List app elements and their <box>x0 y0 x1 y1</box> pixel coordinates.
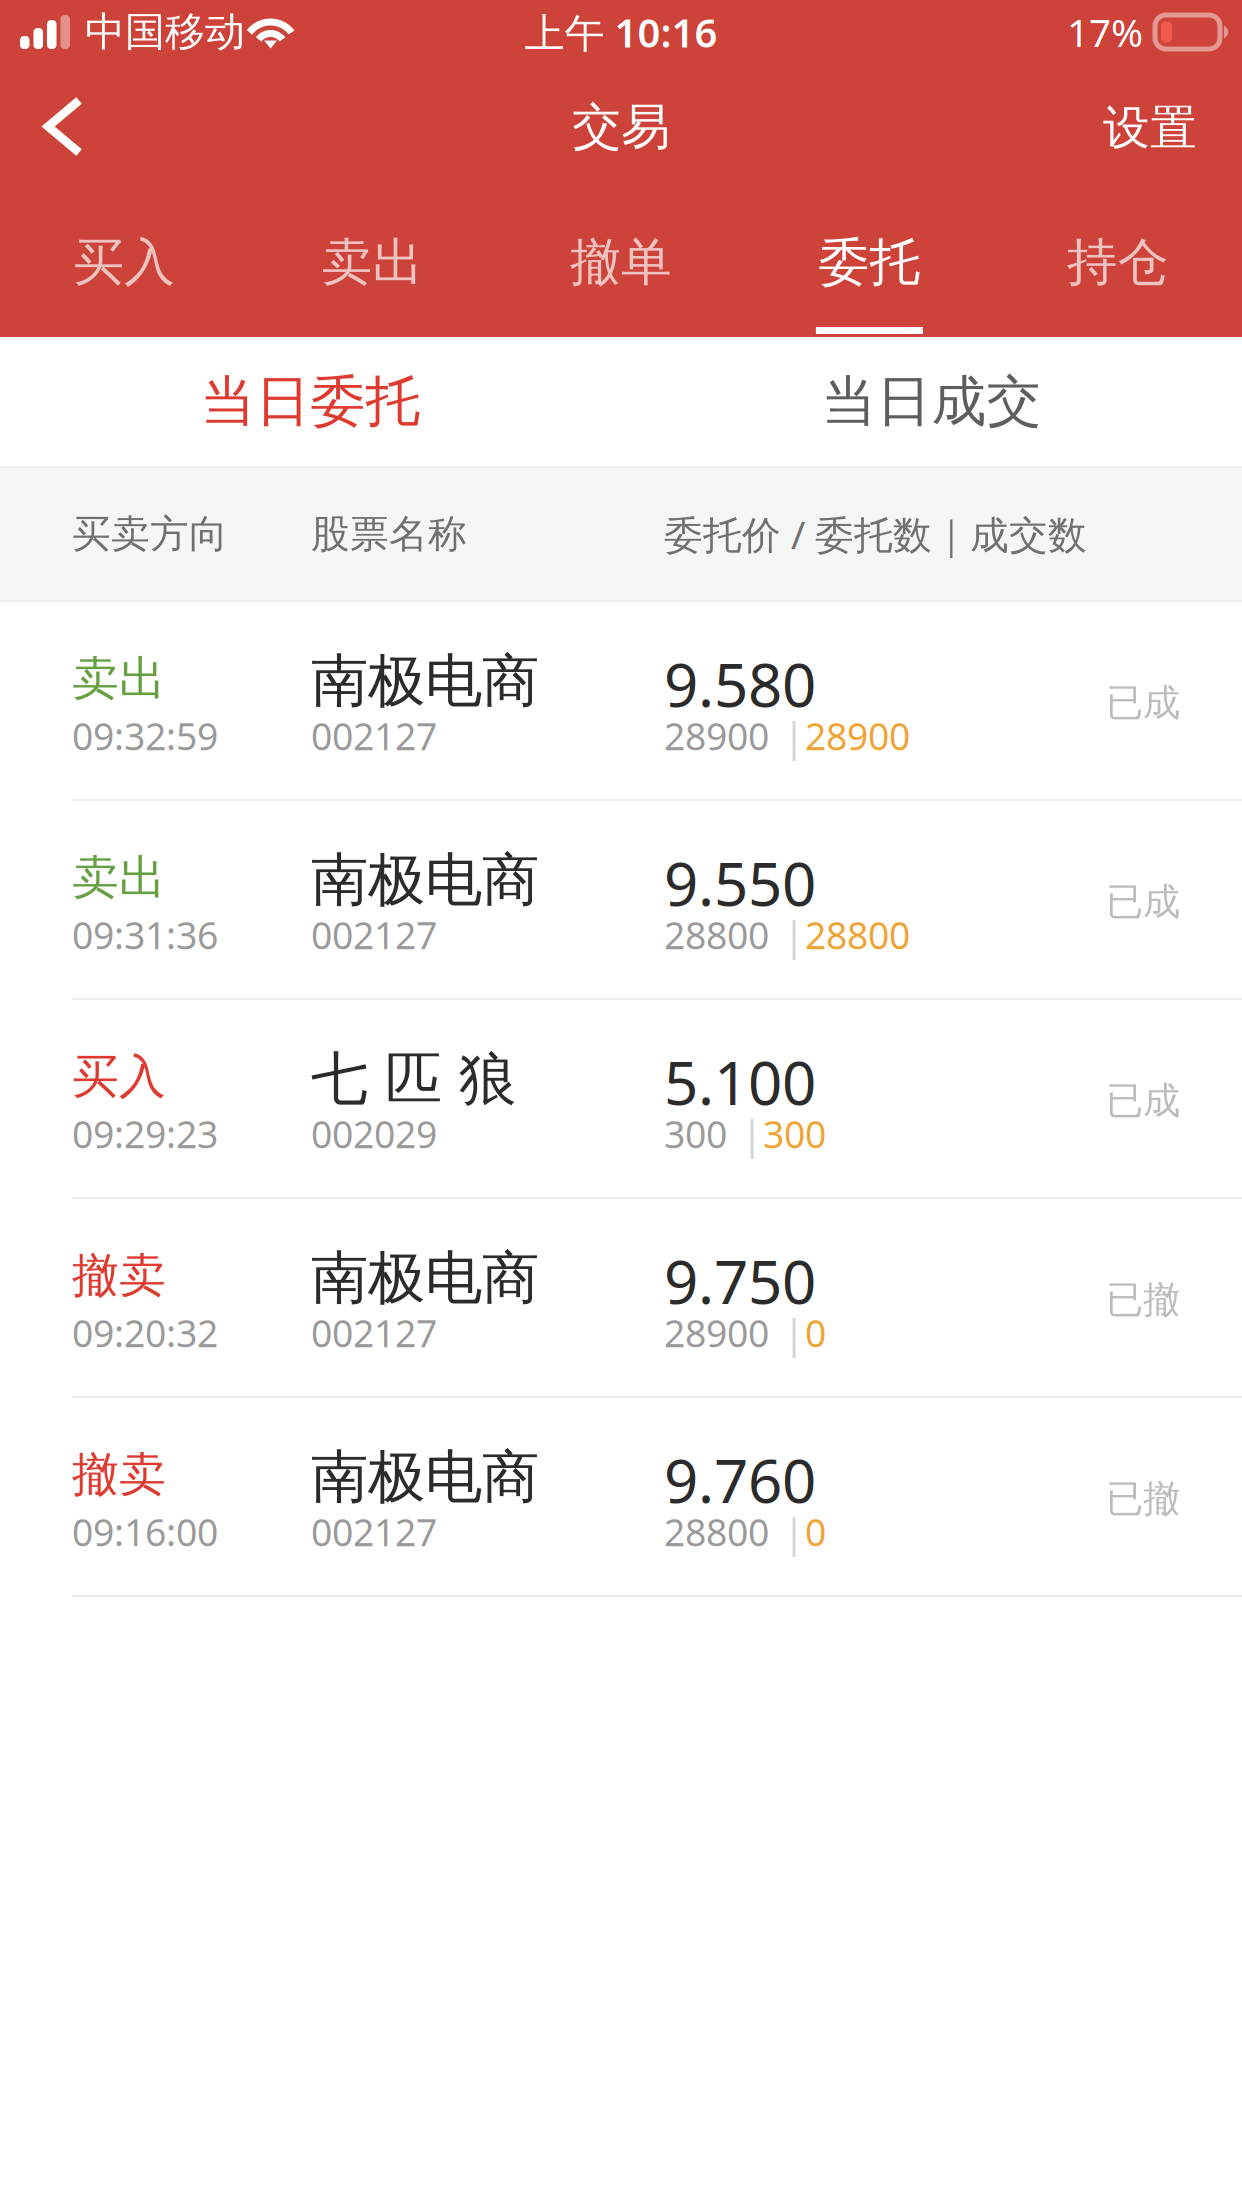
staticText: 七 匹 狼 <box>311 1044 516 1114</box>
staticText: 撤卖 <box>72 1446 166 1503</box>
staticText: 09:20:32 <box>72 1308 218 1358</box>
button[interactable]: 买入 <box>0 174 248 337</box>
staticText: 9.580 <box>664 644 816 724</box>
staticText: 28800 <box>805 910 910 960</box>
staticText: 已撤 <box>1106 1476 1180 1522</box>
staticText: 南极电商 <box>311 845 539 915</box>
staticText: 持仓 <box>1067 231 1169 294</box>
staticText: 委托价 / 委托数｜成交数 <box>664 508 1087 560</box>
staticText: | <box>783 1306 805 1359</box>
staticText: 已成 <box>1106 1078 1180 1124</box>
staticText: 300 <box>763 1109 826 1159</box>
staticText: 买卖方向 <box>72 510 228 558</box>
staticText: 9.550 <box>664 843 816 923</box>
staticText: 撤单 <box>570 231 672 294</box>
staticText: 买入 <box>73 231 175 294</box>
staticText: 卖出 <box>72 650 166 707</box>
staticText: 南极电商 <box>311 1243 539 1313</box>
staticText: 南极电商 <box>311 1442 539 1512</box>
button[interactable]: 撤单 <box>497 174 745 337</box>
staticText: 28900 <box>805 711 910 761</box>
button[interactable]: 撤卖 <box>0 1199 1242 1398</box>
staticText: 09:16:00 <box>72 1507 218 1557</box>
staticText: 买入 <box>72 1048 166 1105</box>
staticText: 002127 <box>311 1507 437 1557</box>
staticText: | <box>741 1107 763 1160</box>
staticText: 002127 <box>311 910 437 960</box>
staticText: 002127 <box>311 1308 437 1358</box>
staticText: 9.760 <box>664 1440 816 1520</box>
staticText: 002029 <box>311 1109 437 1159</box>
staticText: | <box>783 908 805 961</box>
staticText: 当日委托 <box>200 368 420 435</box>
staticText: 南极电商 <box>311 646 539 716</box>
button[interactable]: 委托 <box>745 174 994 337</box>
staticText: 17% <box>1067 6 1143 58</box>
button[interactable]: 卖出 <box>248 174 497 337</box>
staticText: 上午 10:16 <box>524 5 717 58</box>
button[interactable]: 卖出 <box>0 602 1242 801</box>
staticText: 交易 <box>572 97 670 157</box>
button[interactable]: 卖出 <box>0 801 1242 1000</box>
staticText: 撤卖 <box>72 1247 166 1304</box>
staticText: 已成 <box>1106 879 1180 925</box>
staticText: 09:29:23 <box>72 1109 218 1159</box>
staticText: 已撤 <box>1106 1277 1180 1323</box>
staticText: 0 <box>805 1507 826 1557</box>
staticText: 已成 <box>1106 680 1180 726</box>
button[interactable]: 持仓 <box>994 174 1242 337</box>
button[interactable]: 当日委托 <box>0 337 621 466</box>
staticText: 卖出 <box>72 849 166 906</box>
staticText: 002127 <box>311 711 437 761</box>
staticText: 28900 <box>664 1308 769 1358</box>
staticText: 9.750 <box>664 1241 816 1321</box>
staticText: 股票名称 <box>311 510 467 558</box>
staticText: 09:32:59 <box>72 711 218 761</box>
staticText: 09:31:36 <box>72 910 218 960</box>
staticText: 0 <box>805 1308 826 1358</box>
staticText: 卖出 <box>322 231 424 294</box>
staticText: 委托 <box>818 231 920 294</box>
staticText: | <box>783 709 805 762</box>
staticText: | <box>783 1505 805 1558</box>
button[interactable]: 当日成交 <box>621 337 1242 466</box>
staticText: 当日成交 <box>821 368 1041 435</box>
button[interactable]: Back <box>0 64 121 174</box>
button[interactable]: 撤卖 <box>0 1398 1242 1597</box>
button[interactable]: 设置 <box>1067 64 1242 174</box>
staticText: 28800 <box>664 910 769 960</box>
staticText: 中国移动 <box>85 7 245 56</box>
button[interactable]: 买入 <box>0 1000 1242 1199</box>
staticText: 设置 <box>1103 99 1197 157</box>
staticText: 28800 <box>664 1507 769 1557</box>
staticText: 300 <box>664 1109 727 1159</box>
staticText: 28900 <box>664 711 769 761</box>
staticText: 5.100 <box>664 1042 816 1122</box>
